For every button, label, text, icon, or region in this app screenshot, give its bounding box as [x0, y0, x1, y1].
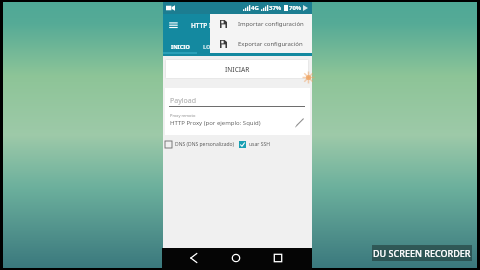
button[interactable]: Back — [189, 253, 199, 263]
staticText: Payload — [170, 96, 197, 106]
staticText: 37% — [269, 4, 282, 12]
button[interactable]: usar SSH — [239, 138, 270, 150]
staticText: INICIAR — [225, 65, 250, 74]
other: Edit — [295, 118, 304, 127]
button[interactable]: Proxy remoto — [165, 110, 310, 135]
staticText: INICIO — [171, 43, 190, 50]
staticText: 70% — [289, 4, 302, 12]
staticText: usar SSH — [249, 141, 270, 148]
staticText: Proxy remoto — [170, 113, 196, 118]
button[interactable]: Exportar configuración — [210, 34, 312, 54]
button[interactable]: INICIAR — [165, 59, 309, 79]
button[interactable]: Home — [231, 253, 241, 263]
staticText: Exportar configuración — [238, 40, 303, 48]
staticText: HTTP Injector — [191, 21, 234, 30]
staticText: LOG — [203, 43, 215, 50]
button[interactable]: Recent apps — [273, 253, 283, 263]
button[interactable]: Open navigation menu — [167, 19, 179, 30]
staticText: DNS (DNS personalizado) — [175, 141, 235, 148]
button[interactable]: DNS (DNS personalizado) — [165, 138, 235, 150]
staticText: DU SCREEN RECORDER — [373, 247, 471, 259]
staticText: HTTP Proxy (por ejemplo: Squid) — [170, 119, 261, 127]
staticText: Importar configuración — [238, 20, 304, 28]
button[interactable]: Importar configuración — [210, 14, 312, 34]
staticText: 4G — [251, 4, 259, 12]
